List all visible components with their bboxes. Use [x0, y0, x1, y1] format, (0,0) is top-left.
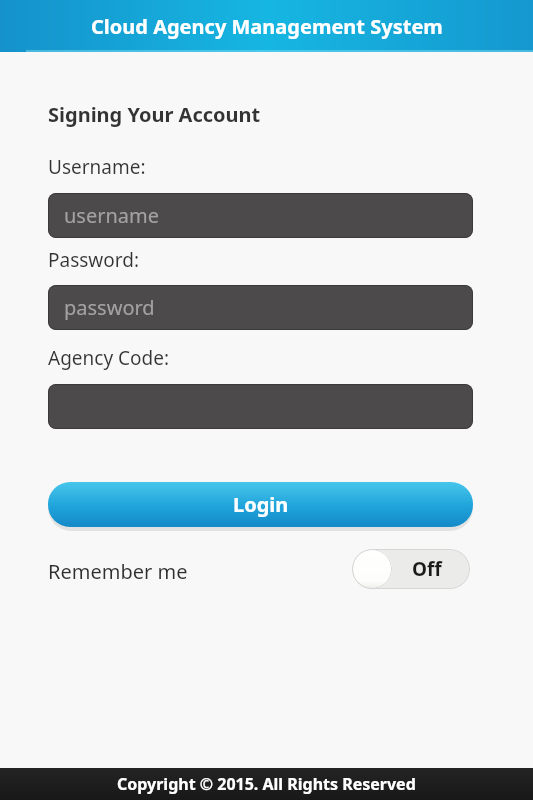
staticText: Signing Your Account	[48, 101, 261, 128]
button[interactable]: password	[48, 285, 473, 330]
button[interactable]: Login	[48, 482, 473, 527]
button[interactable]	[48, 384, 473, 429]
button[interactable]: username	[48, 193, 473, 238]
staticText: password	[64, 294, 155, 321]
staticText: Off	[412, 556, 442, 582]
staticText: Username:	[48, 154, 146, 180]
staticText: Password:	[48, 247, 140, 273]
staticText: Remember me	[48, 558, 188, 585]
staticText: Cloud Agency Management System	[91, 13, 443, 40]
staticText: Agency Code:	[48, 345, 170, 371]
staticText: Login	[233, 491, 289, 518]
staticText: Copyright © 2015. All Rights Reserved	[117, 773, 416, 795]
staticText: username	[64, 202, 160, 229]
button[interactable]: Off	[352, 549, 470, 589]
